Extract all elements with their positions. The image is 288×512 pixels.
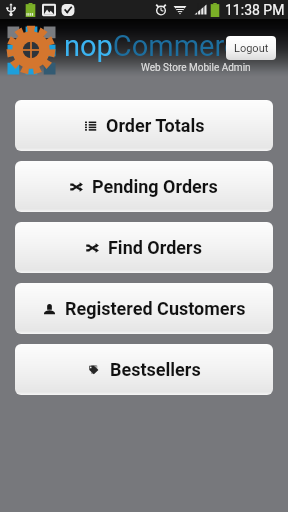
staticText: Order Totals <box>106 115 205 136</box>
staticText: Bestsellers <box>110 359 201 380</box>
button[interactable]: Find Orders <box>15 222 273 273</box>
button[interactable]: Registered Customers <box>15 283 273 334</box>
button[interactable]: Logout <box>226 36 276 60</box>
staticText: nopCommerce <box>64 29 255 63</box>
staticText: Pending Orders <box>92 176 218 197</box>
staticText: Registered Customers <box>65 298 246 319</box>
button[interactable]: Pending Orders <box>15 161 273 212</box>
button[interactable]: Bestsellers <box>15 344 273 395</box>
staticText: Logout <box>234 42 269 55</box>
staticText: Find Orders <box>108 237 202 258</box>
staticText: 11:38 PM <box>225 2 285 18</box>
staticText: Web Store Mobile Admin <box>141 62 251 74</box>
button[interactable]: Order Totals <box>15 100 273 151</box>
